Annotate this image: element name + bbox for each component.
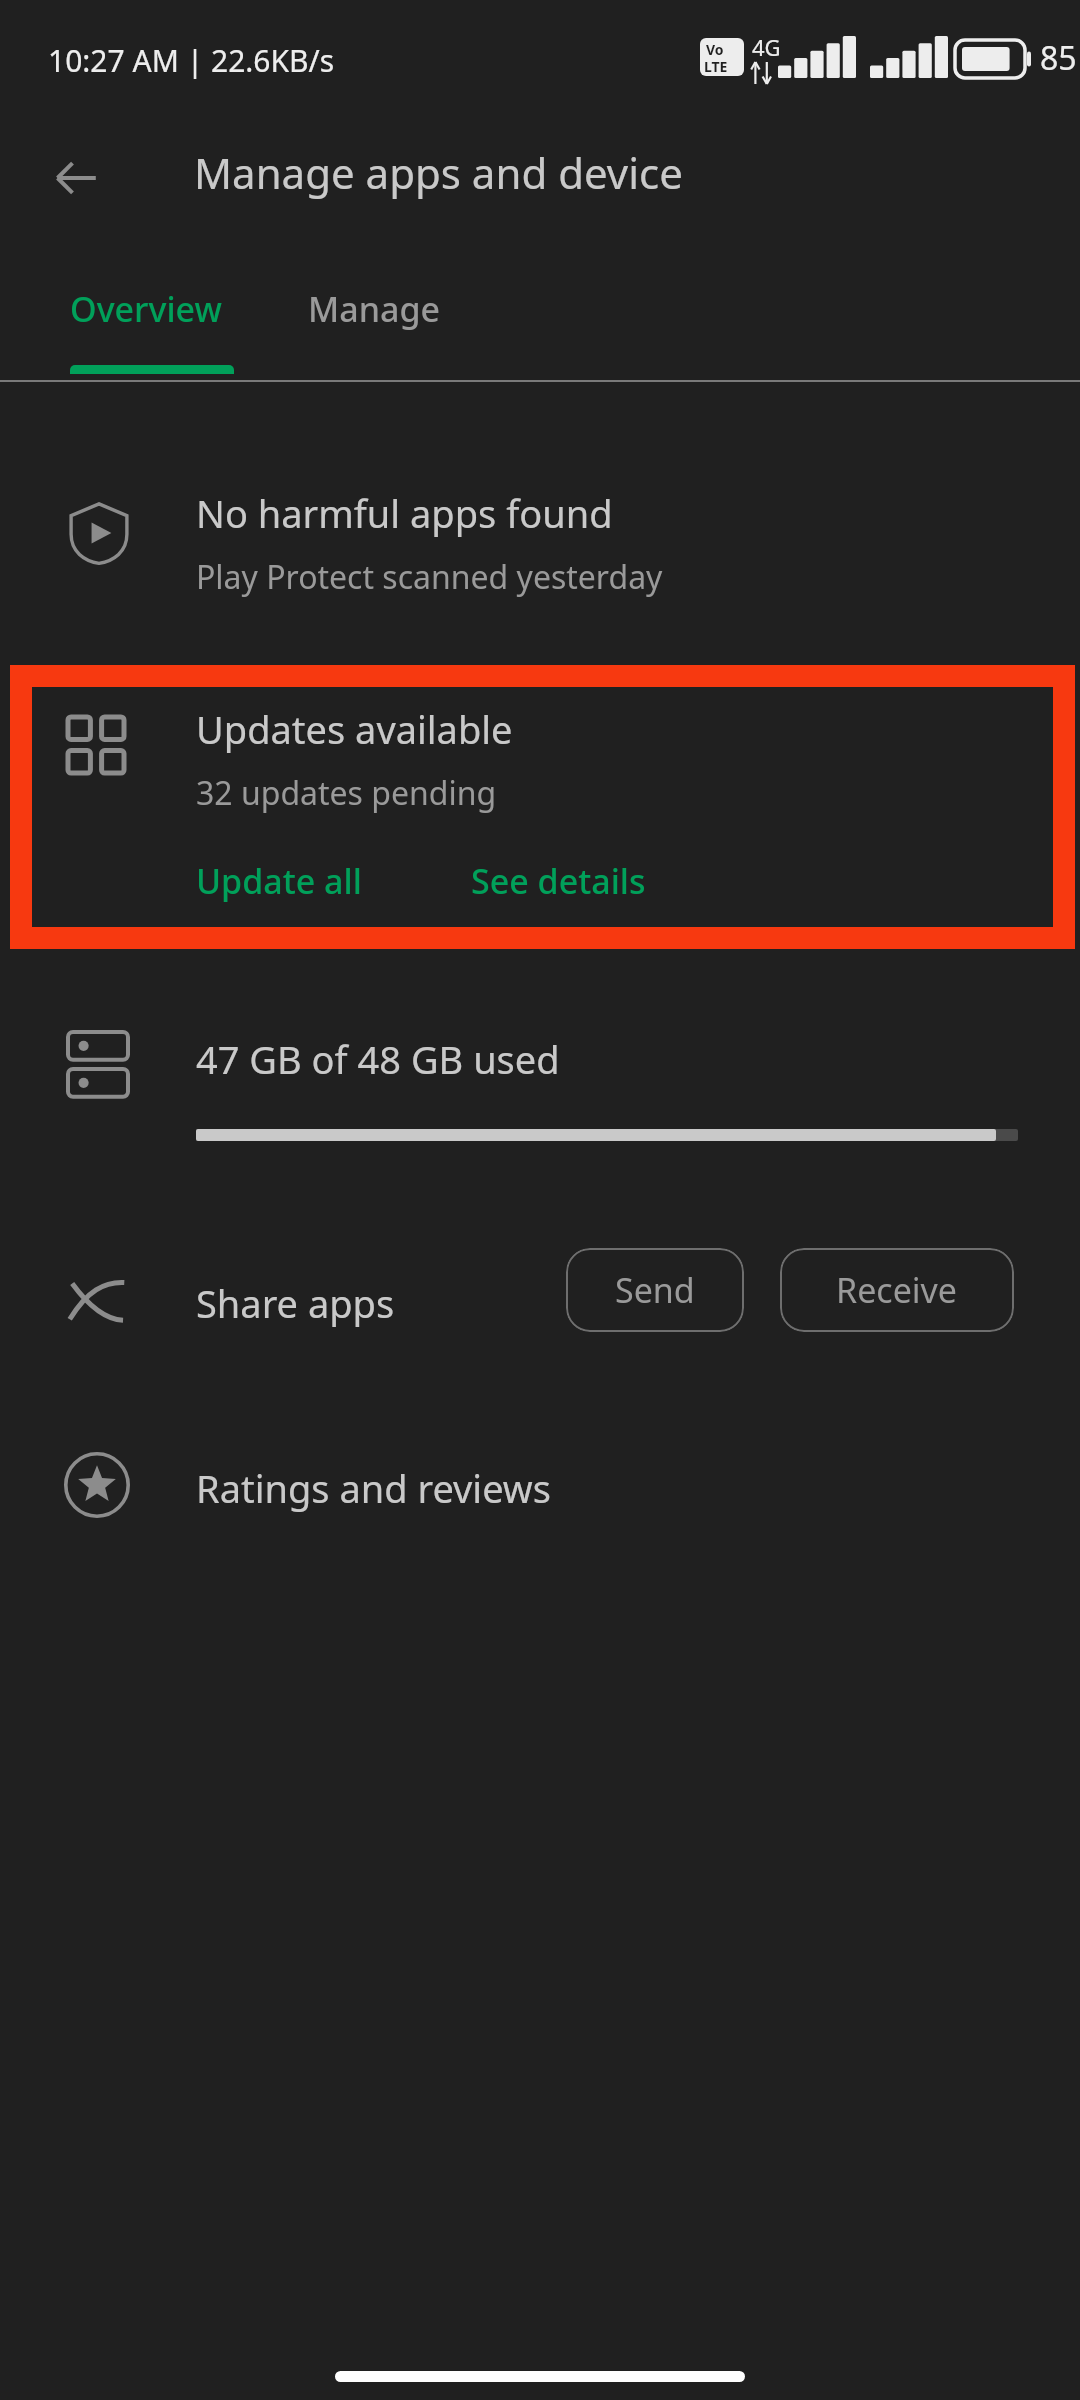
staticText: Play Protect scanned yesterday — [196, 555, 663, 599]
staticText: Update all — [196, 858, 362, 904]
staticText: See details — [471, 858, 646, 904]
button[interactable]: Back — [36, 138, 116, 218]
staticText: Overview — [70, 286, 222, 332]
staticText: Receive — [836, 1267, 958, 1313]
button[interactable]: No harmful apps found — [0, 430, 1080, 640]
button[interactable]: Update all — [182, 845, 376, 917]
staticText: Share apps — [196, 1277, 395, 1329]
button[interactable]: Receive — [780, 1248, 1014, 1332]
staticText: Manage — [308, 286, 441, 332]
staticText: 32 updates pending — [196, 771, 497, 815]
button[interactable]: Send — [566, 1248, 744, 1332]
staticText: 47 GB of 48 GB used — [196, 1033, 560, 1085]
staticText: 4G — [752, 32, 781, 62]
button[interactable] — [0, 1215, 1080, 1385]
staticText: No harmful apps found — [196, 487, 613, 539]
button[interactable]: 47 GB of 48 GB used — [0, 985, 1080, 1175]
button[interactable]: Manage — [264, 268, 464, 380]
staticText: Ratings and reviews — [196, 1462, 551, 1514]
staticText: Manage apps and device — [194, 144, 683, 201]
staticText: Updates available — [196, 703, 513, 755]
button[interactable]: See details — [457, 845, 660, 917]
button[interactable]: Overview — [40, 268, 220, 380]
staticText: 85 — [1040, 36, 1077, 80]
staticText: 10:27 AM | 22.6KB/s — [48, 40, 335, 81]
button[interactable]: Ratings and reviews — [0, 1400, 1080, 1570]
staticText: Vo — [706, 40, 724, 59]
button[interactable]: Updates available — [32, 687, 1053, 927]
staticText: Send — [615, 1267, 695, 1313]
staticText: LTE — [704, 57, 728, 76]
